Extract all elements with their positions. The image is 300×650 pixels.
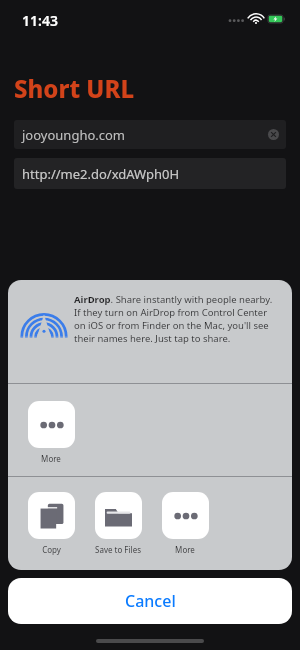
staticText: http://me2.do/xdAWph0H [22,165,180,183]
staticText: Cancel [125,590,176,612]
staticText: AirDrop. Share instantly with people nea… [74,293,279,345]
staticText: jooyoungho.com [22,126,126,144]
button[interactable]: Save to Files [94,492,142,555]
button[interactable]: Cancel [8,578,292,624]
staticText: 11:43 [22,11,58,30]
button[interactable]: http://me2.do/xdAWph0H [14,158,286,189]
button[interactable]: jooyoungho.com [14,120,286,149]
staticText: More [41,453,61,464]
staticText: Short URL [14,72,135,105]
button[interactable]: More [161,492,209,555]
button[interactable]: Copy [27,492,75,555]
button[interactable]: More [27,401,75,464]
staticText: Save to Files [95,544,141,555]
button[interactable]: Clear text [268,129,279,140]
staticText: More [175,544,195,555]
staticText: Copy [42,544,61,555]
